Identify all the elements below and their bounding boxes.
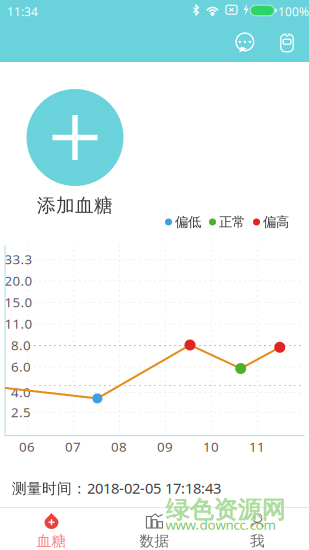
staticText: 4.0 [11,383,31,401]
staticText: 09 [157,438,173,455]
staticText: 2.5 [11,403,31,421]
button[interactable]: Device [270,27,304,59]
staticText: www.downcc.com [165,516,275,533]
staticText: 血糖 [36,532,66,550]
staticText: 正常 [219,214,245,230]
staticText: 绿色资源网 [165,495,285,525]
staticText: 11:34 [7,3,38,19]
staticText: 100% [278,3,309,19]
button[interactable]: 我 [206,508,309,550]
staticText: 偏高 [263,214,289,230]
staticText: 07 [65,438,81,455]
button[interactable]: 数据 [103,508,206,550]
staticText: 20.0 [4,272,32,289]
staticText: 33.3 [4,250,32,268]
staticText: 测量时间：2018-02-05 17:18:43 [12,478,221,498]
button[interactable]: Messages [226,27,264,59]
staticText: 偏低 [175,214,201,230]
staticText: 添加血糖 [37,194,113,217]
button[interactable]: 添加血糖 [20,89,130,214]
staticText: 15.0 [4,293,32,311]
staticText: 6.0 [11,358,31,375]
staticText: 数据 [139,532,169,550]
staticText: 11.0 [4,315,32,332]
staticText: 8.0 [11,336,31,354]
staticText: 08 [111,438,127,455]
button[interactable]: 血糖 [0,508,103,550]
staticText: 10 [203,438,219,455]
staticText: 我 [250,532,265,550]
staticText: 06 [19,438,35,455]
staticText: 11 [249,438,265,455]
